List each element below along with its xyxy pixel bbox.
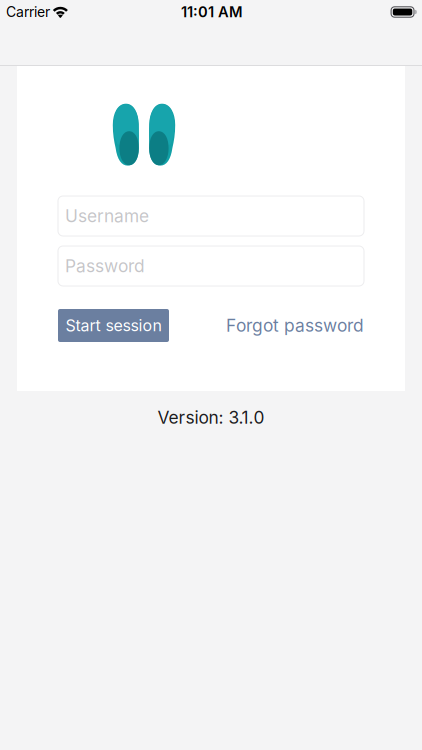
staticText: 11:01 AM [181,3,243,21]
staticText: Password [65,255,145,276]
staticText: Username [65,205,149,226]
button[interactable]: Start session [58,309,169,342]
staticText: Forgot password [226,315,364,336]
staticText: Start session [65,316,161,335]
button[interactable]: Forgot password [226,315,364,336]
staticText: Version: 3.1.0 [157,407,264,428]
staticText: Carrier [6,3,50,20]
